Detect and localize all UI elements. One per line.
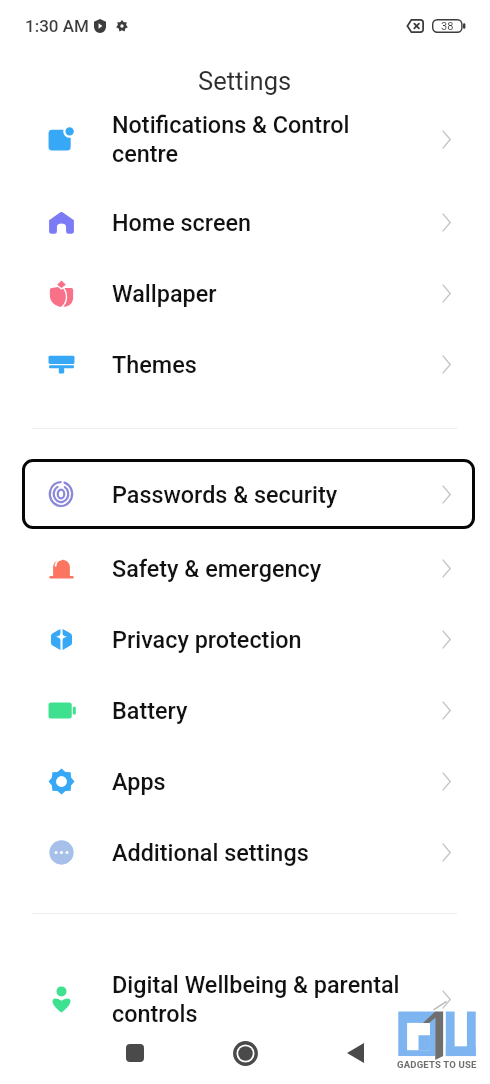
button[interactable]: Recent apps [114, 1032, 156, 1074]
staticText: Home screen [112, 209, 402, 236]
staticText: Apps [112, 768, 402, 795]
staticText: 38 [441, 20, 454, 33]
button[interactable]: Passwords & security [22, 459, 475, 529]
button[interactable]: Wallpaper [0, 258, 490, 329]
staticText: Additional settings [112, 839, 402, 866]
button[interactable]: Themes [0, 329, 490, 400]
button[interactable]: Home [224, 1032, 266, 1074]
button[interactable]: Digital Wellbeing & parental controls [0, 964, 490, 1035]
staticText: Settings [198, 66, 292, 96]
button[interactable]: Home screen [0, 187, 490, 258]
staticText: Themes [112, 351, 402, 378]
button[interactable]: Battery [0, 675, 490, 746]
button[interactable]: Safety & emergency [0, 533, 490, 604]
staticText: 1:30 AM [25, 16, 89, 36]
staticText: Notifications & Control centre [112, 111, 402, 168]
staticText: Digital Wellbeing & parental controls [112, 971, 402, 1028]
staticText: Safety & emergency [112, 555, 402, 582]
staticText: Battery [112, 697, 402, 724]
button[interactable]: Notifications & Control centre [0, 104, 490, 175]
staticText: Wallpaper [112, 280, 402, 307]
staticText: Passwords & security [112, 481, 338, 508]
button[interactable]: Back [334, 1032, 376, 1074]
staticText: GADGETS TO USE [397, 1059, 477, 1070]
button[interactable]: Additional settings [0, 817, 490, 888]
button[interactable]: Privacy protection [0, 604, 490, 675]
button[interactable]: Apps [0, 746, 490, 817]
staticText: Privacy protection [112, 626, 402, 653]
